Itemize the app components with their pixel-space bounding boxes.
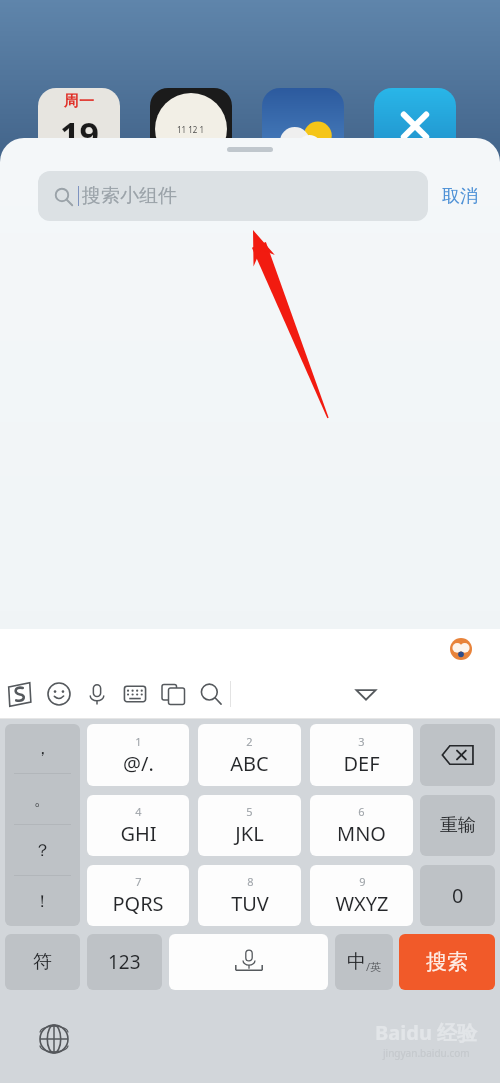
button[interactable]: 4: [87, 795, 189, 856]
staticText: 0: [452, 882, 464, 909]
staticText: 中: [347, 950, 366, 974]
staticText: 5: [246, 804, 253, 819]
button[interactable]: 取消: [428, 171, 492, 221]
staticText: 123: [108, 949, 141, 975]
button[interactable]: ？: [5, 825, 80, 875]
button[interactable]: Search: [192, 669, 230, 719]
staticText: 取消: [442, 185, 478, 208]
staticText: Baidu 经验: [375, 1019, 478, 1046]
staticText: ，: [34, 738, 51, 759]
button[interactable]: 1: [87, 724, 189, 786]
staticText: 7: [135, 874, 142, 889]
staticText: ？: [34, 840, 51, 861]
button[interactable]: ，: [5, 724, 80, 773]
button[interactable]: ！: [5, 876, 80, 926]
staticText: 4: [135, 804, 142, 819]
button[interactable]: Sogou input: [0, 669, 39, 719]
staticText: DEF: [343, 750, 380, 777]
staticText: 周一: [64, 92, 94, 111]
staticText: MNO: [337, 820, 386, 847]
button[interactable]: 搜索小组件: [38, 171, 428, 221]
staticText: jingyan.baidu.com: [383, 1046, 470, 1060]
button[interactable]: 0: [420, 865, 495, 926]
button[interactable]: 9: [310, 865, 413, 926]
button[interactable]: 5: [198, 795, 301, 856]
button[interactable]: Translate: [154, 669, 192, 719]
button[interactable]: Space: [169, 934, 328, 990]
button[interactable]: 123: [87, 934, 162, 990]
button[interactable]: Delete: [420, 724, 495, 786]
button[interactable]: 3: [310, 724, 413, 786]
staticText: GHI: [120, 820, 157, 847]
staticText: 重输: [440, 814, 476, 837]
staticText: 符: [33, 950, 52, 974]
staticText: PQRS: [112, 890, 164, 917]
button[interactable]: 2: [198, 724, 301, 786]
staticText: 11 12 1: [177, 124, 205, 135]
staticText: 3: [358, 734, 365, 749]
button[interactable]: 中: [335, 934, 393, 990]
staticText: 9: [359, 874, 366, 889]
staticText: 8: [247, 874, 254, 889]
staticText: 6: [358, 804, 365, 819]
button[interactable]: Emoji: [39, 669, 78, 719]
button[interactable]: 6: [310, 795, 413, 856]
staticText: /英: [366, 959, 382, 974]
staticText: 19: [60, 111, 99, 157]
button[interactable]: 。: [5, 774, 80, 824]
button[interactable]: Keyboard layout: [116, 669, 154, 719]
button[interactable]: 重输: [420, 795, 495, 856]
staticText: JKL: [235, 820, 264, 847]
staticText: 。: [34, 789, 51, 810]
staticText: WXYZ: [335, 890, 389, 917]
button[interactable]: Change language: [34, 1019, 74, 1059]
button[interactable]: 7: [87, 865, 189, 926]
button[interactable]: Voice input: [78, 669, 116, 719]
staticText: ！: [34, 891, 51, 912]
staticText: TUV: [231, 890, 269, 917]
button[interactable]: 搜索: [399, 934, 495, 990]
staticText: 2: [246, 734, 253, 749]
staticText: 搜索小组件: [82, 184, 177, 208]
staticText: 搜索: [426, 949, 468, 975]
button[interactable]: Hide keyboard: [231, 669, 500, 719]
staticText: 1: [135, 734, 142, 749]
staticText: @/.: [123, 750, 154, 777]
button[interactable]: 符: [5, 934, 80, 990]
staticText: ABC: [230, 750, 269, 777]
button[interactable]: 8: [198, 865, 301, 926]
